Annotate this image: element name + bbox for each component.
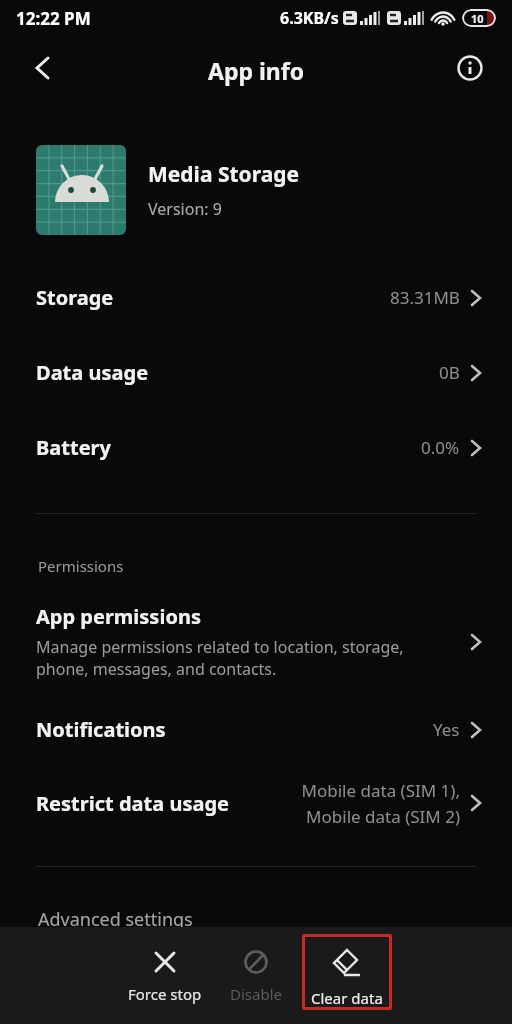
staticText: Advanced settings (38, 907, 193, 932)
staticText: App permissions (36, 603, 201, 630)
button[interactable]: Clear data (295, 927, 399, 1024)
staticText: 10 (471, 11, 484, 26)
staticText: Restrict data usage (36, 790, 229, 817)
staticText: Storage (36, 284, 114, 311)
button[interactable]: Battery (0, 410, 512, 485)
staticText: Mobile data (SIM 1), Mobile data (SIM 2) (301, 779, 460, 828)
staticText: 0.0% (421, 436, 460, 459)
staticText: Manage permissions related to location, … (36, 636, 404, 680)
staticText: 6.3KB/s (280, 7, 339, 29)
staticText: Permissions (38, 556, 124, 576)
button[interactable]: Restrict data usage (0, 767, 512, 839)
staticText: Clear data (311, 988, 383, 1008)
staticText: Notifications (36, 716, 166, 743)
staticText: Force stop (128, 984, 202, 1004)
button[interactable]: Storage (0, 260, 512, 335)
staticText: 0B (439, 361, 460, 384)
staticText: Media Storage (148, 160, 300, 189)
staticText: 12:22 PM (16, 7, 91, 30)
button[interactable] (32, 56, 56, 80)
button[interactable]: Disable (217, 927, 295, 1024)
button[interactable]: Notifications (0, 692, 512, 767)
staticText: Disable (230, 984, 282, 1004)
button[interactable]: Force stop (113, 927, 217, 1024)
staticText: Yes (433, 718, 460, 741)
button[interactable]: Data usage (0, 335, 512, 410)
button[interactable]: App permissions (0, 603, 512, 680)
button[interactable] (456, 54, 484, 82)
staticText: Battery (36, 434, 111, 461)
staticText: 83.31MB (390, 286, 460, 309)
staticText: App info (208, 55, 305, 86)
staticText: Version: 9 (148, 198, 222, 220)
staticText: Data usage (36, 359, 149, 386)
